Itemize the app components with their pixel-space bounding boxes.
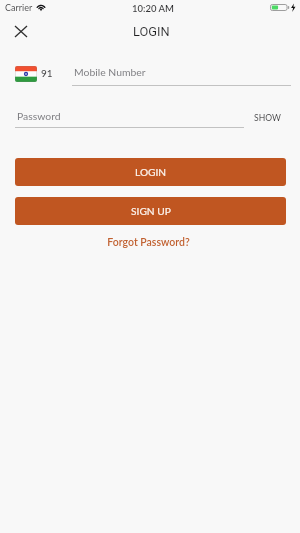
staticText: SIGN UP xyxy=(131,205,171,217)
button[interactable]: Close xyxy=(7,17,35,45)
button[interactable]: Mobile Number xyxy=(72,62,291,86)
staticText: 91 xyxy=(41,67,53,79)
button[interactable]: SIGN UP xyxy=(15,197,286,225)
button[interactable]: Select country code xyxy=(12,61,56,85)
staticText: Mobile Number xyxy=(74,66,146,78)
button[interactable]: Password xyxy=(15,105,244,128)
button[interactable]: Forgot Password? xyxy=(107,236,190,249)
staticText: LOGIN xyxy=(133,24,170,39)
staticText: SHOW xyxy=(254,113,281,123)
staticText: 10:20 AM xyxy=(132,3,174,14)
staticText: Carrier xyxy=(5,2,33,13)
staticText: Password xyxy=(17,110,61,122)
staticText: LOGIN xyxy=(135,166,167,178)
button[interactable]: LOGIN xyxy=(15,158,286,186)
button[interactable]: SHOW xyxy=(254,113,281,123)
